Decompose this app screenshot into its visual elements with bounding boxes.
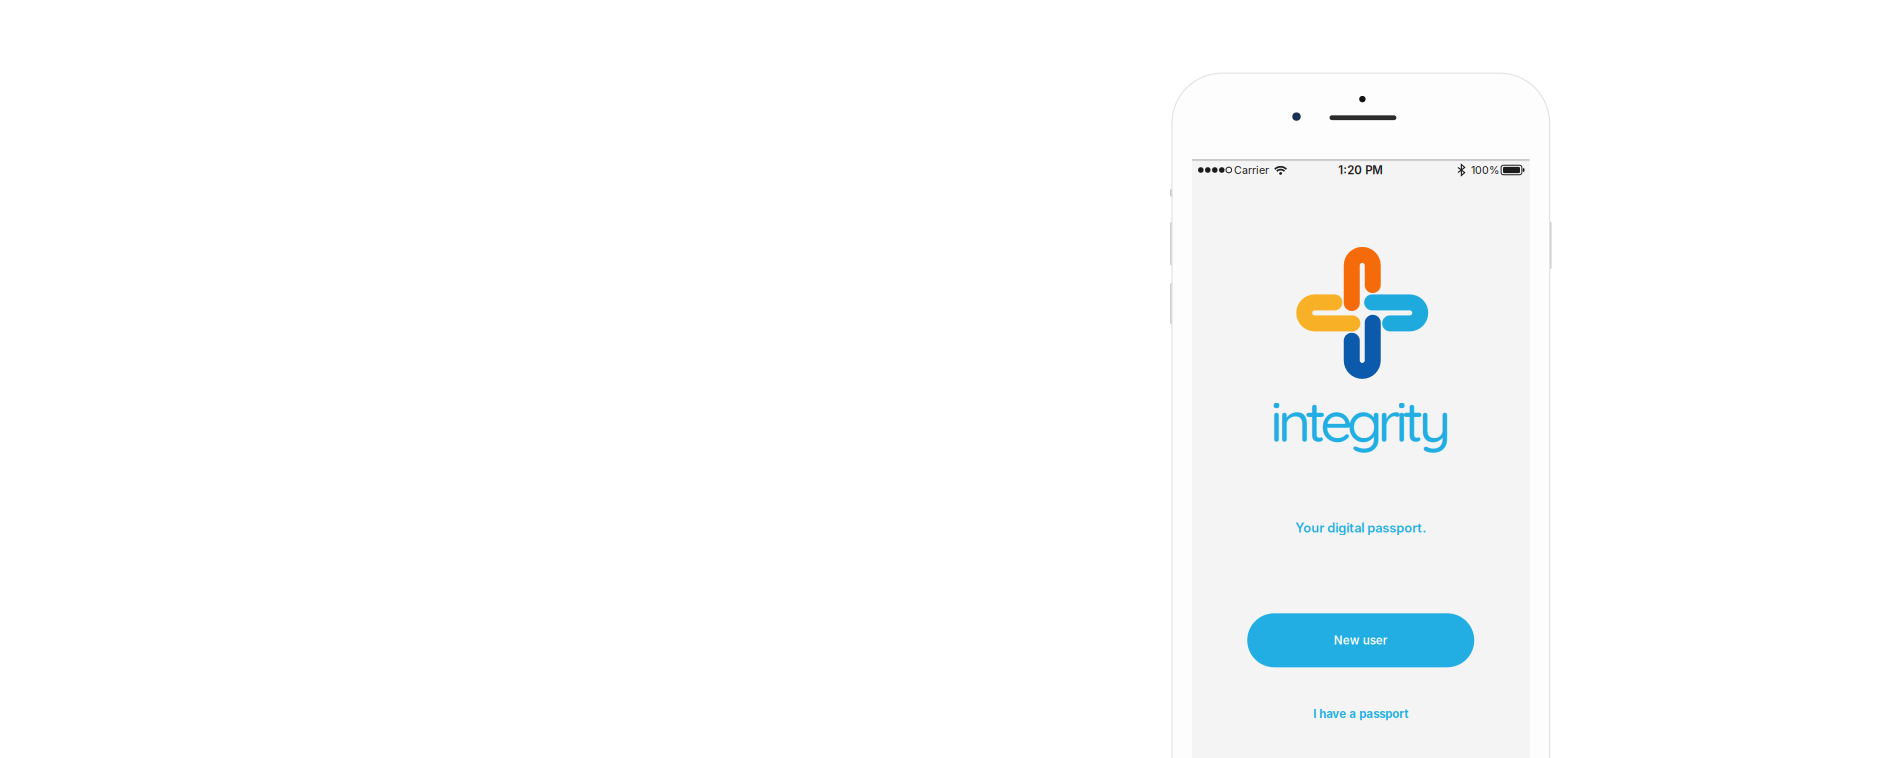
staticText: 100% [1471, 163, 1499, 176]
staticText: 1:20 PM [1338, 163, 1383, 177]
staticText: I have a passport [1313, 707, 1408, 721]
staticText: New user [1334, 633, 1388, 647]
button[interactable]: New user [1247, 613, 1474, 667]
staticText: Your digital passport. [1295, 520, 1426, 535]
staticText: integrity [1270, 385, 1451, 456]
button[interactable]: I have a passport [1301, 700, 1420, 728]
staticText: Carrier [1234, 163, 1269, 176]
